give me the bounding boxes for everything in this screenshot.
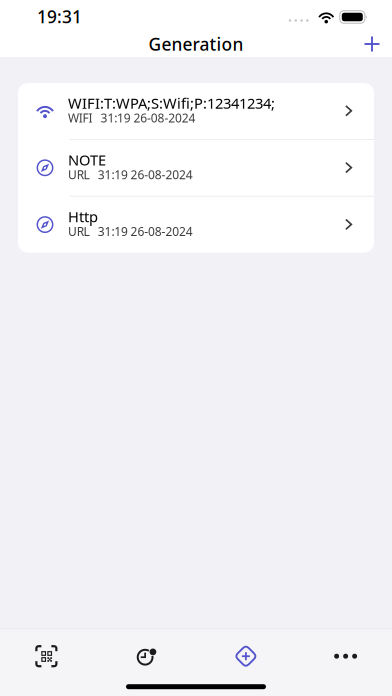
button[interactable]: Add (364, 36, 392, 52)
staticText: Generation (148, 32, 243, 55)
button[interactable]: History (96, 636, 196, 676)
staticText: WIFI 31:19 26-08-2024 (68, 110, 196, 126)
button[interactable]: NOTE (18, 140, 374, 196)
staticText: URL 31:19 26-08-2024 (68, 167, 193, 182)
button[interactable]: Http (18, 197, 374, 253)
button[interactable]: More (296, 636, 392, 676)
staticText: WIFI:T:WPA;S:Wifi;P:12341234; (68, 93, 275, 113)
staticText: NOTE (68, 150, 106, 170)
staticText: Http (68, 207, 98, 226)
button[interactable]: Scan (0, 636, 96, 676)
button[interactable]: WIFI:T:WPA;S:Wifi;P:12341234; (18, 83, 374, 139)
staticText: URL 31:19 26-08-2024 (68, 223, 193, 239)
button[interactable]: Generation (196, 636, 296, 676)
staticText: 19:31 (37, 5, 82, 28)
